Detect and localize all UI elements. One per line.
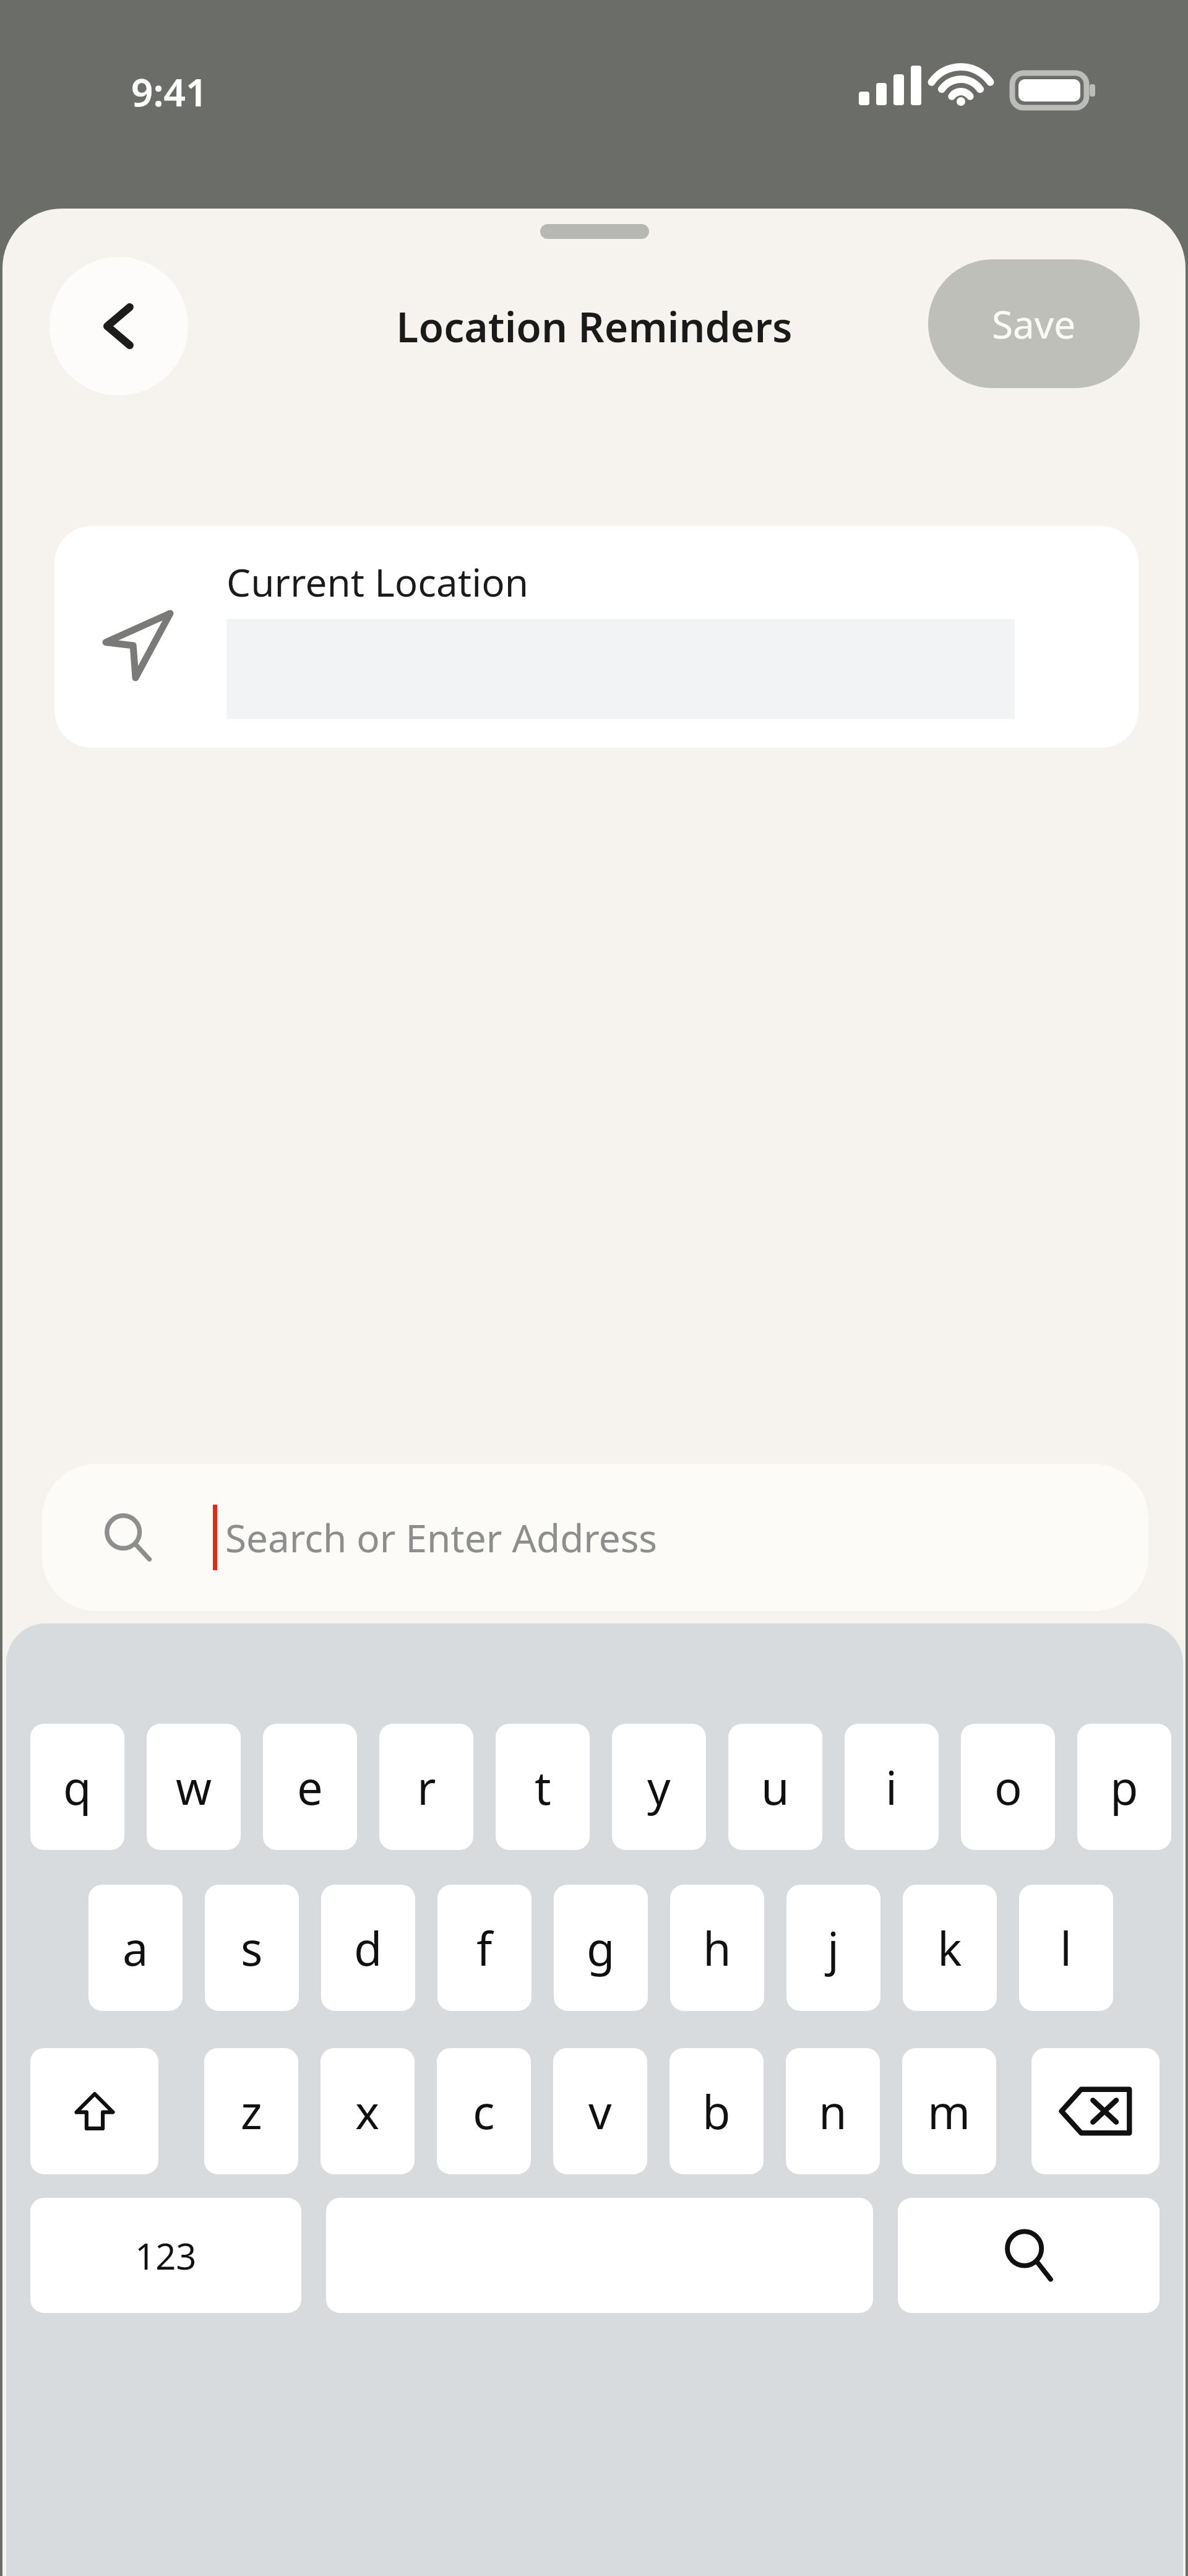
button[interactable]: Search — [898, 2198, 1160, 2313]
button[interactable]: g — [554, 1885, 648, 2011]
button[interactable]: Save — [928, 259, 1140, 388]
button[interactable]: b — [669, 2048, 764, 2174]
button[interactable]: s — [205, 1885, 299, 2011]
staticText: Search or Enter Address — [225, 1511, 658, 1563]
button[interactable]: v — [553, 2048, 647, 2174]
staticText: x — [355, 2080, 380, 2143]
button[interactable]: m — [902, 2048, 996, 2174]
staticText: w — [176, 1756, 212, 1818]
button[interactable]: w — [147, 1724, 241, 1850]
button[interactable]: r — [379, 1724, 473, 1850]
staticText: f — [476, 1917, 493, 1979]
staticText: o — [994, 1756, 1022, 1818]
staticText: Save — [992, 298, 1076, 350]
staticText: a — [123, 1917, 148, 1979]
staticText: c — [473, 2080, 495, 2143]
staticText: z — [241, 2080, 262, 2143]
button[interactable]: c — [437, 2048, 531, 2174]
staticText: j — [827, 1917, 840, 1979]
staticText: 9:41 — [131, 66, 208, 118]
button[interactable]: x — [321, 2048, 415, 2174]
button[interactable]: t — [496, 1724, 590, 1850]
staticText: 123 — [135, 2231, 197, 2280]
button[interactable]: o — [961, 1724, 1055, 1850]
staticText: Current Location — [226, 556, 529, 608]
staticText: m — [928, 2080, 971, 2143]
staticText: q — [63, 1756, 92, 1818]
button[interactable]: h — [670, 1885, 764, 2011]
button[interactable]: d — [321, 1885, 415, 2011]
staticText: p — [1110, 1756, 1138, 1818]
staticText: l — [1060, 1917, 1072, 1979]
staticText: v — [588, 2080, 612, 2143]
staticText: g — [587, 1917, 615, 1979]
button[interactable]: Search or Enter Address — [42, 1464, 1148, 1611]
button[interactable]: e — [263, 1724, 357, 1850]
staticText: u — [761, 1756, 790, 1818]
button[interactable]: f — [437, 1885, 532, 2011]
button[interactable]: u — [728, 1724, 822, 1850]
staticText: s — [241, 1917, 263, 1979]
staticText: Location Reminders — [396, 298, 793, 354]
button[interactable]: Back — [49, 257, 188, 395]
button[interactable]: p — [1077, 1724, 1171, 1850]
staticText: e — [297, 1756, 323, 1818]
button[interactable]: Numbers — [30, 2198, 301, 2313]
button[interactable]: a — [88, 1885, 183, 2011]
staticText: h — [703, 1917, 731, 1979]
staticText: d — [354, 1917, 382, 1979]
staticText: k — [937, 1917, 962, 1979]
button[interactable]: Backspace — [1031, 2048, 1160, 2174]
staticText: t — [535, 1756, 551, 1818]
staticText: n — [819, 2080, 847, 2143]
button[interactable]: Current Location — [54, 526, 1138, 748]
button[interactable]: q — [30, 1724, 124, 1850]
staticText: r — [417, 1756, 436, 1818]
button[interactable]: k — [903, 1885, 997, 2011]
staticText: b — [702, 2080, 731, 2143]
button[interactable]: i — [845, 1724, 939, 1850]
staticText: i — [885, 1756, 898, 1818]
staticText: y — [647, 1756, 671, 1818]
button[interactable]: j — [786, 1885, 880, 2011]
button[interactable]: n — [786, 2048, 880, 2174]
button[interactable]: Shift — [30, 2048, 158, 2174]
button[interactable]: z — [204, 2048, 298, 2174]
button[interactable]: y — [612, 1724, 706, 1850]
button[interactable]: l — [1019, 1885, 1113, 2011]
